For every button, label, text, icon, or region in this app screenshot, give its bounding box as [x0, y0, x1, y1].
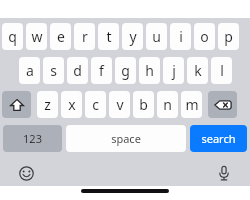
button[interactable]: j	[163, 57, 184, 84]
button[interactable]: h	[139, 57, 160, 84]
button[interactable]: q	[2, 23, 23, 50]
staticText: space	[111, 131, 141, 146]
button[interactable]: i	[170, 23, 191, 50]
staticText: h	[145, 61, 154, 80]
staticText: n	[163, 95, 172, 114]
button[interactable]: 123	[3, 125, 62, 152]
button[interactable]: e	[50, 23, 71, 50]
button[interactable]: x	[61, 91, 82, 118]
staticText: y	[129, 27, 137, 46]
staticText: t	[106, 27, 112, 46]
button[interactable]: u	[146, 23, 167, 50]
button[interactable]: o	[194, 23, 215, 50]
staticText: d	[73, 61, 82, 80]
staticText: l	[220, 61, 224, 80]
button[interactable]: r	[74, 23, 95, 50]
staticText: v	[116, 95, 124, 114]
button[interactable]: Voice input	[212, 161, 236, 185]
staticText: 123	[23, 131, 42, 146]
staticText: g	[121, 61, 130, 80]
button[interactable]: s	[43, 57, 64, 84]
button[interactable]: f	[91, 57, 112, 84]
button[interactable]: c	[85, 91, 106, 118]
button[interactable]: y	[122, 23, 143, 50]
button[interactable]: d	[67, 57, 88, 84]
staticText: z	[44, 95, 51, 114]
staticText: i	[179, 27, 183, 46]
button[interactable]: m	[181, 91, 202, 118]
button[interactable]: Emoji	[14, 161, 38, 185]
button[interactable]: v	[109, 91, 130, 118]
button[interactable]: Shift	[2, 91, 31, 118]
staticText: m	[185, 95, 199, 114]
button[interactable]: search	[190, 125, 247, 152]
staticText: o	[200, 27, 209, 46]
staticText: w	[31, 27, 43, 46]
staticText: s	[50, 61, 57, 80]
button[interactable]: l	[211, 57, 232, 84]
staticText: k	[194, 61, 202, 80]
staticText: search	[201, 131, 236, 146]
staticText: x	[68, 95, 76, 114]
button[interactable]: g	[115, 57, 136, 84]
staticText: p	[224, 27, 233, 46]
button[interactable]: p	[218, 23, 239, 50]
button[interactable]: Backspace	[208, 91, 237, 118]
staticText: a	[26, 61, 34, 80]
staticText: b	[139, 95, 148, 114]
button[interactable]: z	[37, 91, 58, 118]
staticText: c	[92, 95, 99, 114]
button[interactable]: a	[19, 57, 40, 84]
button[interactable]: w	[26, 23, 47, 50]
button[interactable]: n	[157, 91, 178, 118]
button[interactable]: t	[98, 23, 119, 50]
button[interactable]: b	[133, 91, 154, 118]
staticText: r	[82, 27, 88, 46]
button[interactable]: k	[187, 57, 208, 84]
staticText: e	[57, 27, 65, 46]
button[interactable]: space	[66, 125, 186, 152]
staticText: u	[152, 27, 161, 46]
staticText: f	[99, 61, 104, 80]
staticText: j	[172, 61, 176, 80]
staticText: q	[8, 27, 17, 46]
